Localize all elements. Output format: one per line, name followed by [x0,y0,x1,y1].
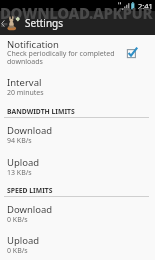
staticText: BANDWIDTH LIMITS [7,107,75,116]
button[interactable]: Notification toggle [121,43,143,63]
button[interactable]: Interval [0,76,155,100]
button[interactable]: Download [0,203,155,227]
staticText: DOWNLOAD.APKPURE [0,3,155,27]
staticText: 0 KB/s [7,215,147,225]
staticText: Download [7,124,53,137]
button[interactable]: Upload [0,156,155,180]
staticText: 13 KB/s [7,168,147,178]
staticText: Interval [7,76,42,89]
staticText: 20 minutes [7,88,147,98]
staticText: 0 KB/s [7,246,147,256]
button[interactable]: Notification [0,38,155,70]
button[interactable]: Back [0,11,5,35]
staticText: SPEED LIMITS [7,186,53,195]
staticText: Download [7,203,53,216]
staticText: Upload [7,234,40,247]
staticText: 94 KB/s [7,136,147,146]
staticText: 2:41 [138,1,153,11]
button[interactable]: Download [0,124,155,148]
button[interactable]: Upload [0,234,155,259]
staticText: Upload [7,156,40,169]
staticText: Notification [7,38,59,51]
staticText: Check periodically for completed downloa… [7,49,119,66]
staticText: Settings [25,16,64,30]
